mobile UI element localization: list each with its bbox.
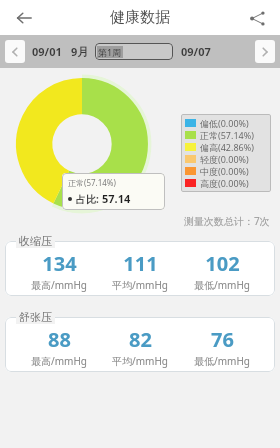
button[interactable]: 88 <box>5 317 275 372</box>
button[interactable]: 134 <box>5 241 275 296</box>
staticText: 第1周 <box>98 46 122 58</box>
staticText: 正常(57.14%) <box>200 129 254 141</box>
staticText: 测量次数总计：7次 <box>184 214 270 228</box>
button[interactable]: Share <box>242 3 272 33</box>
staticText: 9月 <box>71 44 89 59</box>
staticText: 最低/mmHg <box>194 354 250 368</box>
button[interactable]: Previous week <box>5 40 25 63</box>
staticText: 中度(0.00%) <box>200 165 249 177</box>
staticText: 轻度(0.00%) <box>200 153 249 165</box>
button[interactable]: Next week <box>255 40 275 63</box>
staticText: 收缩压 <box>19 234 52 248</box>
button[interactable]: Back <box>8 2 40 34</box>
staticText: 102 <box>205 250 240 277</box>
staticText: 偏高(42.86%) <box>200 141 254 153</box>
staticText: 占比: <box>76 192 102 206</box>
staticText: 正常(57.14%) <box>68 177 116 188</box>
staticText: 76 <box>211 326 234 353</box>
staticText: 09/07 <box>181 44 211 59</box>
staticText: 高度(0.00%) <box>200 177 249 189</box>
staticText: 09/01 <box>32 44 62 59</box>
staticText: 最低/mmHg <box>194 278 250 292</box>
staticText: 健康数据 <box>110 8 170 27</box>
staticText: 134 <box>42 250 77 277</box>
staticText: 最高/mmHg <box>31 278 87 292</box>
staticText: 偏低(0.00%) <box>200 117 249 129</box>
button[interactable]: 第1周 <box>95 43 173 60</box>
staticText: 最高/mmHg <box>31 354 87 368</box>
staticText: 57.14 <box>102 191 131 206</box>
staticText: 82 <box>129 326 152 353</box>
staticText: 舒张压 <box>19 310 52 324</box>
staticText: 平均/mmHg <box>112 278 168 292</box>
staticText: 111 <box>123 250 158 277</box>
staticText: 88 <box>48 326 71 353</box>
staticText: 平均/mmHg <box>112 354 168 368</box>
